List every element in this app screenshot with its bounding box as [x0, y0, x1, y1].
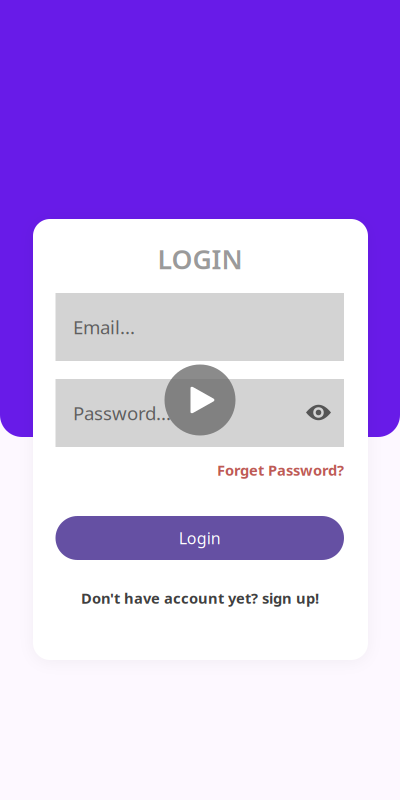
button[interactable]: Show password — [295, 389, 341, 435]
staticText: Don't have account yet? sign up! — [81, 588, 319, 608]
button[interactable]: Password... — [55, 379, 344, 447]
button[interactable]: Email... — [55, 293, 344, 361]
staticText: Password... — [73, 401, 171, 425]
staticText: Forget Password? — [217, 460, 344, 480]
button[interactable]: Login — [55, 516, 344, 560]
button[interactable]: Forget Password? — [55, 459, 344, 481]
staticText: Email... — [73, 315, 135, 339]
staticText: Login — [179, 527, 221, 549]
button[interactable]: Don't have account yet? sign up! — [81, 587, 319, 609]
staticText: LOGIN — [157, 241, 242, 277]
